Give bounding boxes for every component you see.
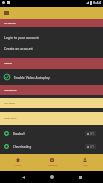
button[interactable]: My Account bbox=[0, 19, 103, 27]
staticText: Notifications bbox=[4, 89, 17, 92]
button[interactable]: Back bbox=[18, 172, 28, 182]
staticText: Fans bbox=[83, 164, 88, 167]
button[interactable]: Other Sports bbox=[0, 112, 103, 125]
button[interactable]: Recent apps bbox=[75, 172, 85, 182]
button[interactable]: Enable Video Autoplay bbox=[0, 69, 103, 85]
staticText: Your Sports bbox=[4, 102, 16, 105]
button[interactable]: Settings bbox=[0, 58, 103, 69]
staticText: Cheerleading bbox=[13, 145, 32, 149]
staticText: Other Sports bbox=[4, 117, 17, 120]
staticText: My Account bbox=[4, 22, 16, 25]
button[interactable]: Home bbox=[47, 172, 57, 182]
button[interactable]: Cheerleading bbox=[0, 140, 103, 153]
staticText: Login to your account bbox=[4, 35, 39, 40]
staticText: Settings bbox=[4, 62, 12, 65]
staticText: Create an account bbox=[4, 46, 33, 51]
button[interactable]: Notifications bbox=[0, 85, 103, 95]
staticText: 0/1 bbox=[90, 132, 94, 136]
button[interactable]: Home bbox=[5, 154, 31, 171]
button[interactable]: 0/1 bbox=[85, 131, 96, 136]
button[interactable]: Baseball bbox=[0, 127, 103, 140]
button[interactable]: Schedule bbox=[39, 154, 65, 171]
staticText: 0/1 bbox=[90, 145, 94, 149]
button[interactable]: 0/1 bbox=[85, 144, 96, 149]
button[interactable]: Your Sports bbox=[0, 98, 103, 108]
button[interactable]: Create an account bbox=[0, 43, 103, 54]
staticText: Baseball bbox=[13, 132, 25, 136]
button[interactable]: Open navigation menu bbox=[3, 10, 9, 16]
staticText: 5:44 bbox=[93, 0, 101, 5]
staticText: Enable Video Autoplay bbox=[14, 75, 50, 80]
button[interactable]: Login to your account bbox=[0, 32, 103, 43]
staticText: Schedule bbox=[48, 164, 57, 167]
button[interactable]: Fans bbox=[72, 154, 98, 171]
staticText: Home bbox=[15, 164, 21, 167]
